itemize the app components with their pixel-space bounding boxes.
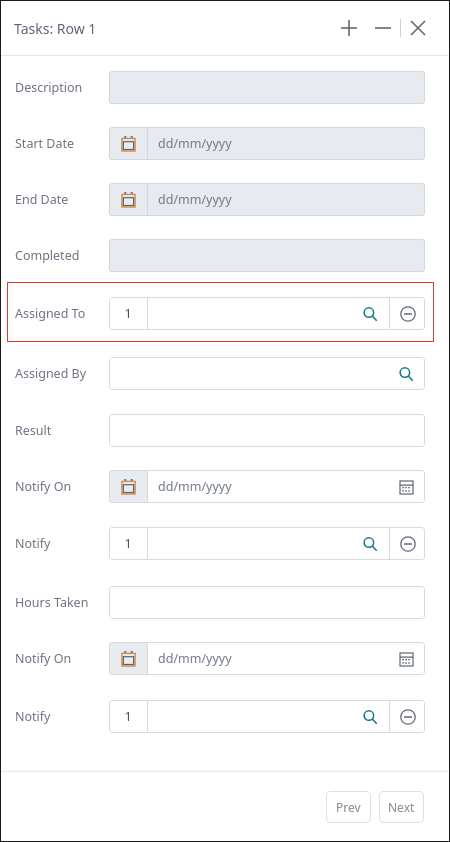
- button[interactable]: Prev: [326, 791, 371, 823]
- staticText: Description: [15, 79, 83, 96]
- button[interactable]: Open calendar: [391, 472, 421, 502]
- staticText: Assigned To: [15, 305, 86, 322]
- button[interactable]: Next: [379, 791, 424, 823]
- staticText: Notify On: [15, 650, 72, 667]
- button[interactable]: Close: [401, 11, 435, 45]
- staticText: Result: [15, 422, 52, 439]
- button[interactable]: Search Assigned To: [355, 299, 385, 329]
- staticText: 1: [124, 708, 132, 725]
- button[interactable]: 1: [109, 527, 425, 560]
- button[interactable]: Search Assigned By: [391, 359, 421, 389]
- button[interactable]: 1: [109, 297, 425, 330]
- staticText: 1: [124, 535, 132, 552]
- staticText: dd/mm/yyyy: [158, 478, 232, 495]
- button[interactable]: [109, 586, 425, 619]
- button[interactable]: dd/mm/yyyy: [109, 642, 425, 675]
- button[interactable]: [109, 239, 425, 272]
- button[interactable]: Remove Notify: [390, 700, 425, 733]
- button[interactable]: Search Notify: [355, 529, 385, 559]
- staticText: 1: [124, 305, 132, 322]
- button[interactable]: Search Notify: [355, 702, 385, 732]
- staticText: End Date: [15, 191, 69, 208]
- button[interactable]: 1: [109, 700, 425, 733]
- button[interactable]: Open calendar: [391, 644, 421, 674]
- button[interactable]: [109, 71, 425, 104]
- staticText: Tasks: Row 1: [14, 19, 97, 38]
- staticText: Notify: [15, 708, 51, 725]
- staticText: dd/mm/yyyy: [158, 135, 232, 152]
- button[interactable]: dd/mm/yyyy: [109, 183, 425, 216]
- button[interactable]: Add: [332, 11, 366, 45]
- staticText: Next: [388, 799, 415, 815]
- staticText: Assigned By: [15, 365, 87, 382]
- button[interactable]: dd/mm/yyyy: [109, 470, 425, 503]
- staticText: dd/mm/yyyy: [158, 191, 232, 208]
- staticText: Notify On: [15, 478, 72, 495]
- staticText: dd/mm/yyyy: [158, 650, 232, 667]
- staticText: Hours Taken: [15, 594, 89, 611]
- button[interactable]: Minimize: [366, 11, 400, 45]
- button[interactable]: Remove Notify: [390, 527, 425, 560]
- button[interactable]: Remove Assigned To: [390, 297, 425, 330]
- staticText: Start Date: [15, 135, 75, 152]
- staticText: Completed: [15, 247, 80, 264]
- button[interactable]: [109, 414, 425, 447]
- staticText: Notify: [15, 535, 51, 552]
- button[interactable]: Search Assigned By: [109, 357, 425, 390]
- button[interactable]: dd/mm/yyyy: [109, 127, 425, 160]
- staticText: Prev: [336, 799, 361, 815]
